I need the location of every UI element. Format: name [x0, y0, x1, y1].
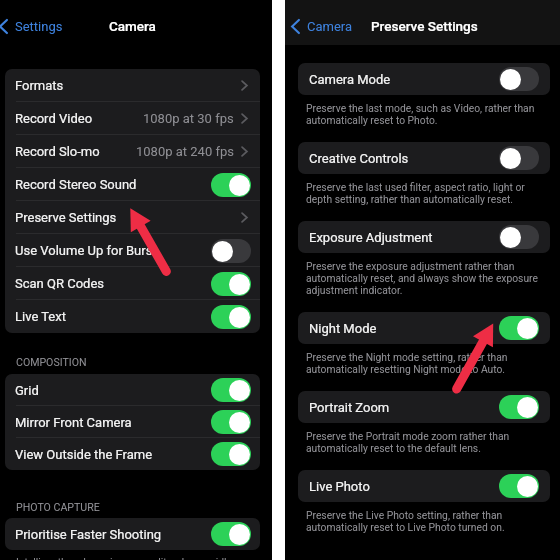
staticText: Preserve the exposure adjustment rather …	[306, 260, 538, 296]
button[interactable]: Formats	[5, 69, 260, 102]
button[interactable]: Live Text	[5, 300, 260, 333]
button[interactable]: On	[499, 316, 539, 340]
button[interactable]: Grid	[5, 374, 260, 406]
button[interactable]: Prioritise Faster Shooting	[5, 518, 260, 550]
button[interactable]: Night Mode	[298, 312, 550, 344]
staticText: 1080p at 30 fps	[143, 111, 234, 126]
staticText: View Outside the Frame	[15, 447, 153, 462]
staticText: Camera	[109, 18, 156, 34]
staticText: Preserve the Night mode setting, rather …	[306, 351, 508, 375]
button[interactable]: Use Volume Up for Burst	[5, 234, 260, 267]
button[interactable]: Exposure Adjustment	[298, 221, 550, 253]
button[interactable]: On	[499, 395, 539, 419]
staticText: Preserve Settings	[371, 18, 478, 34]
staticText: Use Volume Up for Burst	[15, 243, 157, 258]
staticText: Formats	[15, 78, 64, 93]
staticText: Scan QR Codes	[15, 276, 104, 291]
staticText: Exposure Adjustment	[309, 230, 433, 245]
staticText: Portrait Zoom	[309, 400, 390, 415]
staticText: Prioritise Faster Shooting	[15, 527, 162, 542]
button[interactable]: On	[211, 272, 251, 296]
button[interactable]: Record Stereo Sound	[5, 168, 260, 201]
staticText: Preserve the Live Photo setting, rather …	[306, 509, 505, 533]
staticText: Preserve the last used filter, aspect ra…	[306, 181, 525, 205]
staticText: Record Slo-mo	[15, 144, 100, 159]
button[interactable]: Off	[499, 146, 539, 170]
button[interactable]: Camera	[291, 18, 353, 34]
staticText: Camera	[307, 19, 353, 34]
button[interactable]: Mirror Front Camera	[5, 406, 260, 438]
button[interactable]: Record Slo-mo	[5, 135, 260, 168]
button[interactable]: On	[211, 378, 251, 402]
button[interactable]: Off	[499, 225, 539, 249]
staticText: Live Photo	[309, 479, 370, 494]
button[interactable]: Live Photo	[298, 470, 550, 502]
staticText: Preserve the last mode, such as Video, r…	[306, 102, 535, 126]
staticText: COMPOSITION	[16, 356, 87, 368]
staticText: Intelligently reduces image quality when…	[16, 556, 232, 560]
button[interactable]: Portrait Zoom	[298, 391, 550, 423]
staticText: Preserve the Portrait mode zoom rather t…	[306, 430, 510, 454]
button[interactable]: On	[211, 522, 251, 546]
staticText: Creative Controls	[309, 151, 409, 166]
button[interactable]: On	[211, 305, 251, 329]
button[interactable]: Record Video	[5, 102, 260, 135]
staticText: Preserve Settings	[15, 210, 117, 225]
button[interactable]: Creative Controls	[298, 142, 550, 174]
button[interactable]: Camera Mode	[298, 63, 550, 95]
staticText: Camera Mode	[309, 72, 391, 87]
staticText: Live Text	[15, 309, 66, 324]
staticText: PHOTO CAPTURE	[16, 501, 100, 513]
staticText: Record Stereo Sound	[15, 177, 137, 192]
button[interactable]: On	[499, 474, 539, 498]
staticText: 1080p at 240 fps	[136, 144, 234, 159]
button[interactable]: Settings	[0, 18, 64, 34]
button[interactable]: View Outside the Frame	[5, 438, 260, 470]
button[interactable]: Off	[499, 67, 539, 91]
button[interactable]: On	[211, 173, 251, 197]
button[interactable]: On	[211, 442, 251, 466]
button[interactable]: On	[211, 410, 251, 434]
staticText: Mirror Front Camera	[15, 415, 132, 430]
staticText: Night Mode	[309, 321, 377, 336]
staticText: Settings	[15, 19, 63, 34]
staticText: Grid	[15, 383, 39, 398]
staticText: Record Video	[15, 111, 93, 126]
button[interactable]: Off	[211, 239, 251, 263]
button[interactable]: Scan QR Codes	[5, 267, 260, 300]
button[interactable]: Preserve Settings	[5, 201, 260, 234]
